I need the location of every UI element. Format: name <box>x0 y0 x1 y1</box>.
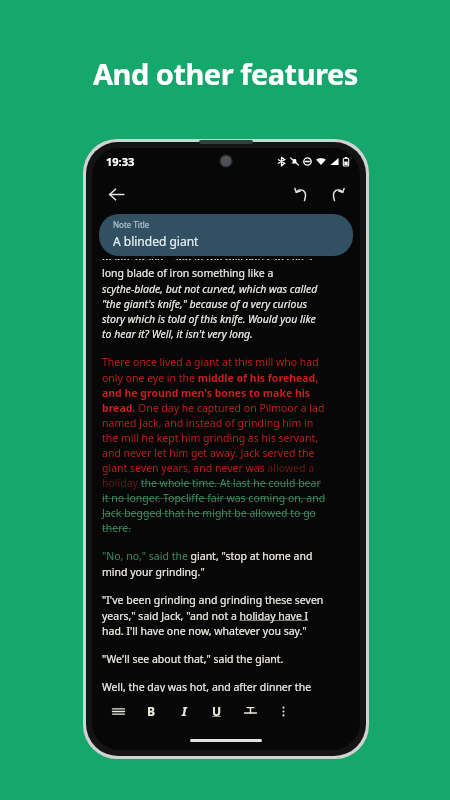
button[interactable]: Note Title <box>99 214 353 256</box>
staticText: giants grave," and in the mill you can s… <box>102 259 313 260</box>
button[interactable]: Bold <box>138 698 164 724</box>
staticText: "We'll see about that," said the giant. <box>102 652 284 666</box>
staticText: A blinded giant <box>113 233 199 249</box>
staticText: U <box>212 703 222 719</box>
staticText: 19:33 <box>106 154 135 169</box>
staticText: I <box>182 703 187 719</box>
staticText: long blade of iron something like a scyt… <box>102 266 318 341</box>
staticText: B <box>147 703 155 719</box>
staticText: There once lived a giant at this mill wh… <box>102 355 326 535</box>
button[interactable]: Italic <box>171 698 197 724</box>
staticText: "No, no," said the giant, "stop at home … <box>102 549 313 579</box>
staticText: Note Title <box>113 219 150 230</box>
staticText: And other features <box>93 54 358 93</box>
staticText: Well, the day was hot, and after dinner … <box>102 680 312 692</box>
button[interactable]: Underline <box>204 698 230 724</box>
button[interactable]: Back <box>99 177 133 211</box>
button[interactable]: Redo <box>321 178 353 210</box>
button[interactable]: More options <box>270 698 296 724</box>
button[interactable]: Undo <box>285 178 317 210</box>
button[interactable]: giants grave," and in the mill you can s… <box>102 259 350 692</box>
staticText: "I've been grinding and grinding these s… <box>102 593 324 638</box>
button[interactable]: Format list <box>105 698 131 724</box>
button[interactable]: Strikethrough <box>237 698 263 724</box>
